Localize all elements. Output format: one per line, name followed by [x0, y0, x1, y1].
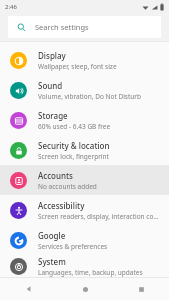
staticText: Search settings: [35, 22, 89, 32]
staticText: Storage: [38, 110, 68, 121]
button[interactable]: Google: [0, 225, 169, 255]
staticText: Display: [38, 50, 66, 61]
button[interactable]: Recent apps: [113, 278, 169, 300]
button[interactable]: Accounts: [0, 165, 169, 195]
staticText: No accounts added: [38, 182, 97, 191]
button[interactable]: Search settings: [8, 16, 161, 38]
button[interactable]: Display: [0, 45, 169, 75]
staticText: Security & location: [38, 140, 110, 151]
staticText: System: [38, 256, 66, 267]
staticText: Screen readers, display, interaction con…: [38, 212, 161, 221]
staticText: Google: [38, 230, 66, 241]
staticText: Languages, time, backup, updates: [38, 268, 143, 277]
button[interactable]: Back: [0, 278, 57, 300]
staticText: Accounts: [38, 170, 73, 181]
button[interactable]: Sound: [0, 75, 169, 105]
button[interactable]: Security & location: [0, 135, 169, 165]
staticText: Accessibility: [38, 200, 85, 211]
button[interactable]: Home: [57, 278, 113, 300]
staticText: Wallpaper, sleep, font size: [38, 62, 117, 71]
staticText: Sound: [38, 80, 63, 91]
staticText: 60% used - 6.43 GB free: [38, 122, 111, 131]
button[interactable]: Storage: [0, 105, 169, 135]
staticText: Services & preferences: [38, 242, 108, 251]
button[interactable]: Accessibility: [0, 195, 169, 225]
staticText: 2:46: [5, 3, 17, 11]
staticText: Screen lock, fingerprint: [38, 152, 109, 161]
staticText: Volume, vibration, Do Not Disturb: [38, 92, 142, 101]
button[interactable]: System: [0, 255, 169, 277]
